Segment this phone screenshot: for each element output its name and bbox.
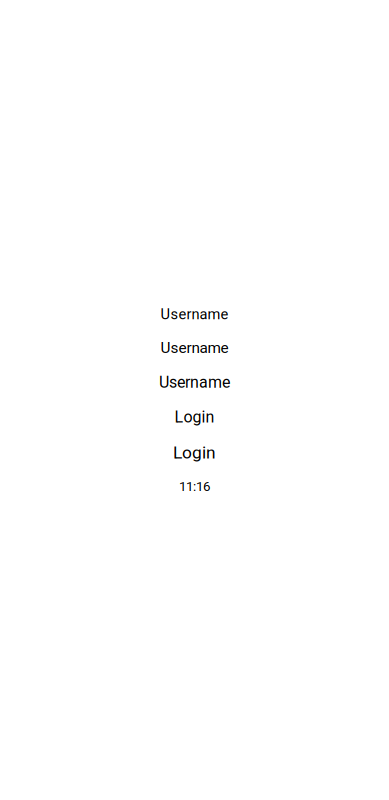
staticText: Username <box>160 339 228 357</box>
staticText: Username <box>160 306 228 323</box>
staticText: Login <box>173 442 216 463</box>
staticText: Username <box>159 373 230 392</box>
staticText: Login <box>174 408 214 426</box>
staticText: 11:16 <box>179 479 210 494</box>
